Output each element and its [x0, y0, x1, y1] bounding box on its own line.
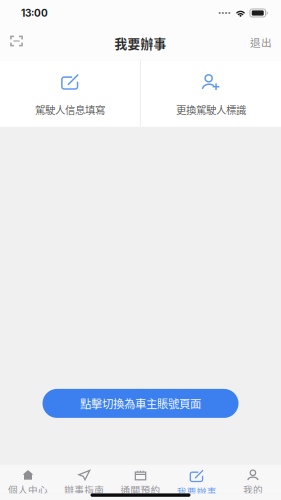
- staticText: 駕駛人信息填寫: [35, 102, 105, 117]
- button[interactable]: Scan QR code: [0, 28, 33, 58]
- staticText: 辦事指南: [64, 482, 104, 496]
- staticText: 我的: [243, 482, 263, 496]
- staticText: 退出: [250, 34, 272, 50]
- button[interactable]: 更換駕駛人標識: [141, 60, 281, 126]
- button[interactable]: 退出: [243, 28, 279, 58]
- staticText: 點擊切換為車主賬號頁面: [80, 395, 201, 412]
- button[interactable]: 個人中心: [0, 464, 56, 493]
- button[interactable]: 駕駛人信息填寫: [0, 60, 140, 126]
- staticText: 我要辦事: [177, 484, 217, 498]
- button[interactable]: 辦事指南: [56, 464, 112, 493]
- staticText: 更換駕駛人標識: [176, 102, 246, 117]
- staticText: 我要辦事: [114, 34, 166, 52]
- button[interactable]: 我要辦事: [169, 464, 225, 493]
- staticText: 13:00: [21, 7, 48, 19]
- button[interactable]: 點擊切換為車主賬號頁面: [42, 389, 238, 418]
- staticText: 個人中心: [8, 482, 48, 496]
- button[interactable]: 我的: [225, 464, 281, 493]
- button[interactable]: 通關預約: [112, 464, 169, 493]
- staticText: 通關預約: [120, 482, 160, 496]
